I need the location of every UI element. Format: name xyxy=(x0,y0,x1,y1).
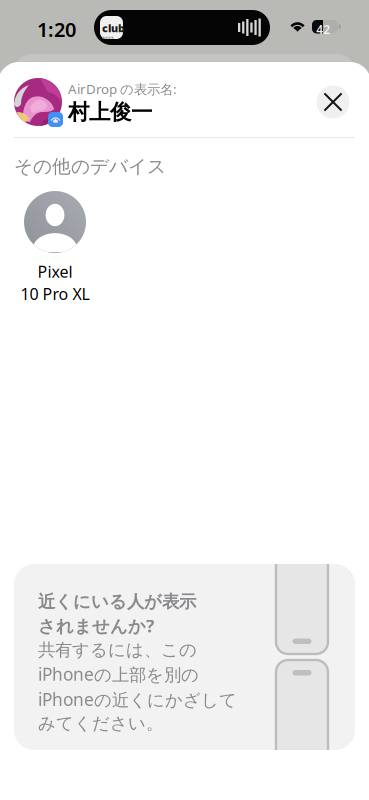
staticText: その他のデバイス xyxy=(14,155,166,178)
staticText: みてください。 xyxy=(38,713,163,734)
staticText: iPhoneの近くにかざして xyxy=(38,688,237,711)
staticText: 近くにいる人が表示 xyxy=(38,591,196,612)
staticText: 村上俊一 xyxy=(68,99,152,125)
button[interactable]: 閉じる xyxy=(311,80,355,124)
staticText: club xyxy=(102,21,125,35)
staticText: ▪▪▪▪ xyxy=(102,35,114,40)
button[interactable]: Pixel xyxy=(10,191,100,304)
staticText: されませんか? xyxy=(38,614,154,637)
staticText: 42 xyxy=(316,21,330,37)
staticText: Pixel xyxy=(37,261,72,282)
staticText: 1:20 xyxy=(37,16,76,43)
staticText: iPhoneの上部を別の xyxy=(38,663,199,686)
staticText: 10 Pro XL xyxy=(20,283,89,304)
staticText: AirDrop の表示名: xyxy=(68,80,177,98)
staticText: 共有するには、この xyxy=(38,639,197,661)
